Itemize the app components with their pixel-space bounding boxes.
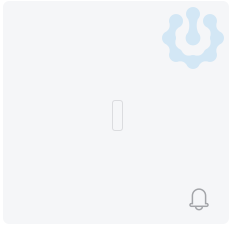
button[interactable]: Switch [112, 100, 122, 130]
button[interactable]: Doorbell [189, 188, 209, 210]
